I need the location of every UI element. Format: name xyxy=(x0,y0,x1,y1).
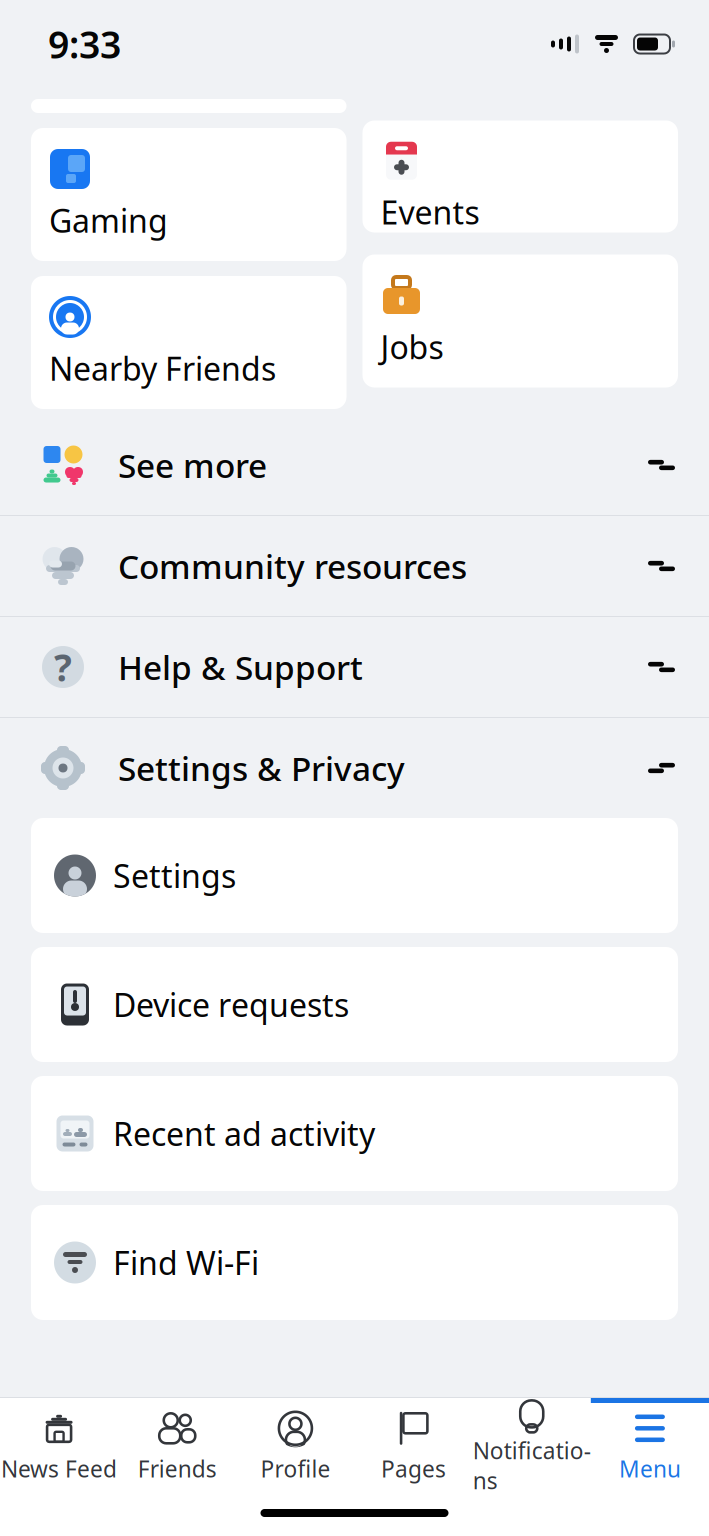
button[interactable]: ? xyxy=(0,617,709,717)
staticText: Settings & Privacy xyxy=(118,746,405,790)
button[interactable]: Recent ad activity xyxy=(31,1076,678,1191)
button[interactable]: Settings xyxy=(31,818,678,933)
button[interactable]: Jobs xyxy=(362,254,678,387)
staticText: Nearby Friends xyxy=(49,347,276,389)
staticText: Profile xyxy=(260,1454,330,1484)
staticText: News Feed xyxy=(1,1454,117,1484)
staticText: Device requests xyxy=(113,983,349,1026)
staticText: Pages xyxy=(381,1454,446,1484)
staticText: Events xyxy=(380,191,479,233)
button[interactable]: Device requests xyxy=(31,947,678,1062)
staticText: Menu xyxy=(619,1454,681,1484)
button[interactable]: Pages xyxy=(354,1398,473,1490)
button[interactable]: See more xyxy=(0,415,709,515)
staticText: 9:33 xyxy=(48,19,121,69)
staticText: Find Wi-Fi xyxy=(113,1241,259,1284)
staticText: Recent ad activity xyxy=(113,1112,375,1155)
button[interactable]: Gaming xyxy=(31,128,346,261)
staticText: Notifications xyxy=(473,1435,591,1496)
button[interactable]: Find Wi-Fi xyxy=(31,1205,678,1320)
button[interactable]: News Feed xyxy=(0,1398,118,1490)
staticText: Gaming xyxy=(49,199,168,241)
staticText: See more xyxy=(118,443,267,487)
button[interactable]: Friends xyxy=(118,1398,236,1490)
staticText: Friends xyxy=(138,1454,217,1484)
button[interactable]: Profile xyxy=(236,1398,354,1490)
button[interactable]: Notifications xyxy=(473,1398,591,1490)
staticText: Help & Support xyxy=(118,645,363,689)
button[interactable]: Events xyxy=(362,120,678,232)
button[interactable]: Community resources xyxy=(0,516,709,616)
staticText: ? xyxy=(54,642,72,692)
staticText: Settings xyxy=(113,854,236,897)
staticText: Jobs xyxy=(380,325,443,368)
button[interactable]: Menu xyxy=(591,1398,709,1490)
button[interactable]: Settings & Privacy xyxy=(0,718,709,818)
button[interactable]: Nearby Friends xyxy=(31,276,346,409)
staticText: Community resources xyxy=(118,544,467,588)
